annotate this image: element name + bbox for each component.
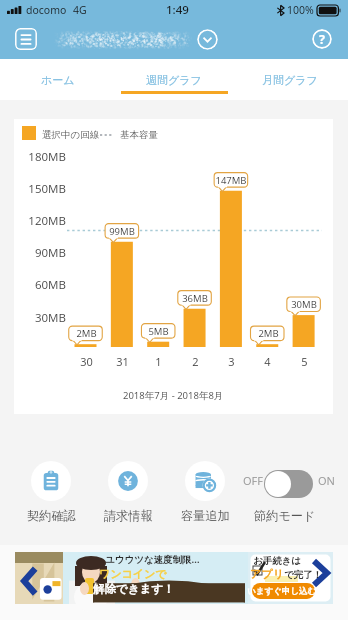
staticText: 99MB (109, 225, 135, 238)
staticText: 30MB (34, 310, 66, 326)
staticText: 60MB (34, 277, 66, 293)
button[interactable]: OFF (240, 455, 338, 519)
staticText: 5MB (148, 325, 169, 338)
staticText: 1:49 (166, 2, 189, 18)
staticText: 150MB (28, 181, 66, 197)
staticText: 容量追加 (181, 508, 230, 523)
button[interactable]: Help (312, 29, 332, 49)
staticText: 基本容量 (120, 129, 158, 141)
staticText: 月間グラフ (262, 73, 318, 87)
button[interactable]: Advertisement (15, 552, 333, 604)
staticText: ユウウツな速度制限… (105, 553, 200, 566)
staticText: 4G (73, 3, 87, 17)
button[interactable]: 容量追加 (165, 455, 245, 519)
staticText: 90MB (34, 245, 66, 261)
staticText: で完了！ (284, 569, 323, 581)
staticText: 2018年7月 - 2018年8月 (123, 389, 224, 402)
button[interactable]: Menu (15, 28, 37, 50)
staticText: 180MB (28, 149, 66, 165)
staticText: 週間グラフ (146, 73, 202, 87)
staticText: 100% (287, 3, 314, 17)
button[interactable]: 週間グラフ (116, 59, 232, 100)
staticText: お手続きは (253, 555, 302, 567)
button[interactable]: ホーム (0, 59, 116, 100)
button[interactable]: 月間グラフ (232, 59, 348, 100)
staticText: ホーム (41, 73, 75, 87)
staticText: 120MB (28, 213, 66, 229)
staticText: 契約確認 (27, 508, 76, 523)
staticText: 節約モード (254, 508, 316, 523)
staticText: ワンコインで (99, 567, 167, 581)
staticText: いますぐ申し込む ＞ (247, 585, 327, 597)
staticText: 解除できます！ (93, 582, 175, 596)
staticText: 4 (264, 354, 271, 369)
staticText: 30 (80, 354, 93, 369)
staticText: OFF (243, 473, 264, 488)
staticText: 36MB (182, 292, 208, 305)
staticText: 5 (301, 354, 308, 369)
staticText: 2MB (76, 327, 97, 340)
staticText: docomo (26, 3, 67, 17)
staticText: 請求情報 (104, 508, 153, 523)
staticText: 147MB (215, 174, 247, 187)
staticText: 2 (192, 354, 199, 369)
staticText: 2MB (258, 327, 279, 340)
staticText: ON (318, 473, 335, 488)
staticText: 30MB (291, 298, 317, 311)
button[interactable]: Switch line (197, 29, 218, 50)
button[interactable]: 請求情報 (88, 455, 168, 519)
staticText: アプリ (250, 567, 284, 581)
staticText: ? (319, 31, 325, 48)
button[interactable]: 契約確認 (11, 455, 91, 519)
staticText: 31 (116, 354, 129, 369)
staticText: 1 (155, 354, 162, 369)
staticText: 選択中の回線 (42, 129, 100, 141)
staticText: 3 (228, 354, 235, 369)
